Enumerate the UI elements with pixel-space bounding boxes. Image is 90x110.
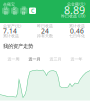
staticText: 理财: [22, 6, 26, 16]
button[interactable]: 近一年: [70, 57, 83, 62]
staticText: 累计收益: [3, 33, 19, 38]
staticText: 近三月: [49, 57, 61, 61]
button[interactable]: 理财: [20, 8, 27, 14]
staticText: C: [31, 7, 34, 14]
staticText: 7.14: [3, 27, 17, 35]
staticText: 近一月: [28, 57, 40, 61]
button[interactable]: Customer service: [29, 7, 36, 14]
staticText: 昨日收益 0.00: [61, 13, 85, 19]
staticText: 余额宝: [3, 2, 15, 7]
staticText: 累计收益: [69, 23, 85, 28]
button[interactable]: 近一周: [7, 57, 20, 62]
staticText: 24: [41, 27, 49, 35]
staticText: 总金额(元): [67, 1, 85, 7]
staticText: 我的资产走势: [3, 43, 33, 50]
button[interactable]: 定期: [11, 8, 18, 14]
staticText: 8.89: [64, 3, 85, 17]
staticText: 活期: [4, 6, 8, 16]
staticText: 七日年化: [69, 33, 85, 38]
button[interactable]: 近三月: [49, 57, 62, 62]
staticText: 0.46: [70, 27, 84, 35]
staticText: 近一周: [7, 57, 19, 61]
button[interactable]: 近一月: [28, 57, 41, 62]
staticText: 定期: [13, 6, 17, 16]
staticText: 昨日收益: [37, 23, 53, 28]
staticText: 总资产(元): [3, 23, 21, 29]
staticText: 近一年: [70, 57, 82, 61]
staticText: 持有天数: [37, 33, 53, 38]
button[interactable]: 活期: [2, 8, 9, 14]
